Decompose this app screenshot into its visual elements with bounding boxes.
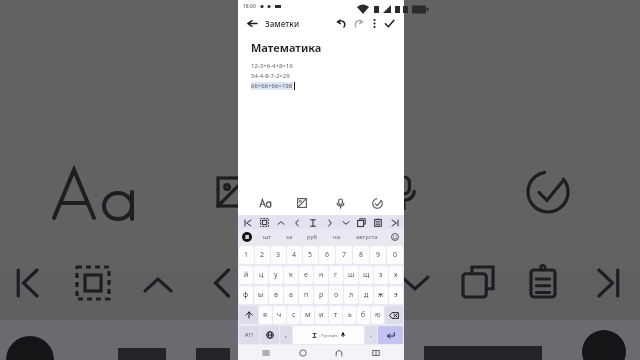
button[interactable]: #1? (239, 326, 260, 344)
button[interactable]: за (283, 233, 296, 241)
button[interactable]: х (389, 266, 403, 284)
button[interactable]: . (365, 326, 377, 344)
button[interactable]: Home (295, 345, 311, 360)
button[interactable]: ж (374, 286, 388, 304)
button[interactable]: Paste (371, 216, 384, 229)
button[interactable]: 9 (370, 246, 386, 264)
button[interactable]: Emoji (390, 232, 400, 242)
button[interactable]: в (269, 286, 283, 304)
button[interactable]: ш (344, 266, 358, 284)
staticText: м (305, 310, 311, 320)
button[interactable]: с (287, 306, 300, 324)
button[interactable]: Move up (274, 216, 287, 229)
button[interactable]: Checklist (366, 192, 388, 214)
button[interactable]: 8 (353, 246, 369, 264)
button[interactable]: Back (331, 345, 347, 360)
button[interactable]: 3 (271, 246, 286, 264)
button[interactable]: 1 (239, 246, 254, 264)
button[interactable]: Recents (368, 345, 384, 360)
button[interactable]: августа (353, 233, 381, 241)
button[interactable]: 2 (255, 246, 270, 264)
button[interactable]: а (284, 286, 298, 304)
button[interactable]: Заметки (265, 18, 300, 29)
button[interactable]: й (239, 266, 253, 284)
button[interactable]: Copy (355, 216, 368, 229)
button[interactable]: Select all (258, 216, 271, 229)
staticText: августа (356, 233, 378, 241)
staticText: 9 (376, 250, 381, 260)
button[interactable]: Insert image (291, 192, 313, 214)
button[interactable]: Move left (290, 216, 303, 229)
button[interactable]: ю (371, 306, 384, 324)
button[interactable]: з (374, 266, 388, 284)
button[interactable]: э (389, 286, 403, 304)
button[interactable]: Menu (258, 345, 274, 360)
button[interactable]: б (357, 306, 370, 324)
staticText: 1 (244, 250, 249, 260)
staticText: п (304, 290, 309, 300)
button[interactable]: Select text (306, 216, 319, 229)
staticText: 6 (325, 250, 330, 260)
staticText: г (334, 270, 338, 280)
button[interactable]: е (299, 266, 313, 284)
button[interactable]: на (330, 233, 344, 241)
button[interactable]: д (359, 286, 373, 304)
staticText: э (394, 290, 398, 300)
button[interactable]: я (259, 306, 272, 324)
button[interactable]: Voice input (329, 192, 351, 214)
staticText: ы (258, 290, 264, 300)
staticText: ю (375, 310, 381, 320)
staticText: б (361, 310, 366, 320)
button[interactable]: Backspace (385, 306, 403, 324)
button[interactable]: н (314, 266, 328, 284)
button[interactable]: Математика (251, 40, 322, 55)
button[interactable]: Enter (378, 326, 403, 344)
button[interactable]: л (344, 286, 358, 304)
button[interactable]: 5 (303, 246, 318, 264)
button[interactable]: Change keyboard language (261, 326, 279, 344)
button[interactable]: Move down (339, 216, 352, 229)
button[interactable]: 7 (336, 246, 352, 264)
button[interactable]: More options (367, 16, 381, 30)
button[interactable]: т (329, 306, 342, 324)
button[interactable]: г (329, 266, 343, 284)
button[interactable]: Done (381, 15, 398, 32)
button[interactable]: ф (239, 286, 253, 304)
button[interactable]: ц (254, 266, 268, 284)
button[interactable]: Move right (323, 216, 336, 229)
button[interactable]: руб (304, 233, 321, 241)
button[interactable]: Move to start (241, 216, 254, 229)
button[interactable]: Move to end (388, 216, 401, 229)
staticText: р (319, 290, 324, 300)
button[interactable]: о (329, 286, 343, 304)
button[interactable]: м (301, 306, 314, 324)
button[interactable]: шт (260, 233, 275, 241)
button[interactable]: у (269, 266, 283, 284)
staticText: 5 (308, 250, 313, 260)
button[interactable]: Space (293, 326, 364, 344)
button[interactable]: Shift (239, 306, 258, 324)
button[interactable]: 4 (287, 246, 302, 264)
button[interactable]: 0 (387, 246, 403, 264)
button[interactable]: ы (254, 286, 268, 304)
button[interactable]: ь (343, 306, 356, 324)
button[interactable]: и (315, 306, 328, 324)
staticText: х (394, 270, 398, 280)
button[interactable]: Back (244, 15, 260, 31)
button[interactable]: ч (273, 306, 286, 324)
button[interactable]: к (284, 266, 298, 284)
button[interactable]: щ (359, 266, 373, 284)
staticText: щ (363, 270, 370, 280)
button[interactable]: 6 (319, 246, 335, 264)
staticText: 7 (342, 250, 347, 260)
button[interactable]: п (299, 286, 313, 304)
button[interactable]: Redo (350, 15, 367, 32)
button[interactable]: р (314, 286, 328, 304)
button[interactable]: Text format (254, 192, 276, 214)
button[interactable]: , (280, 326, 292, 344)
staticText: 66+66+66=198 (251, 82, 293, 90)
staticText: 4 (292, 250, 297, 260)
button[interactable]: Undo (333, 15, 350, 32)
button[interactable]: Assistant (242, 232, 252, 242)
staticText: е (304, 270, 308, 280)
